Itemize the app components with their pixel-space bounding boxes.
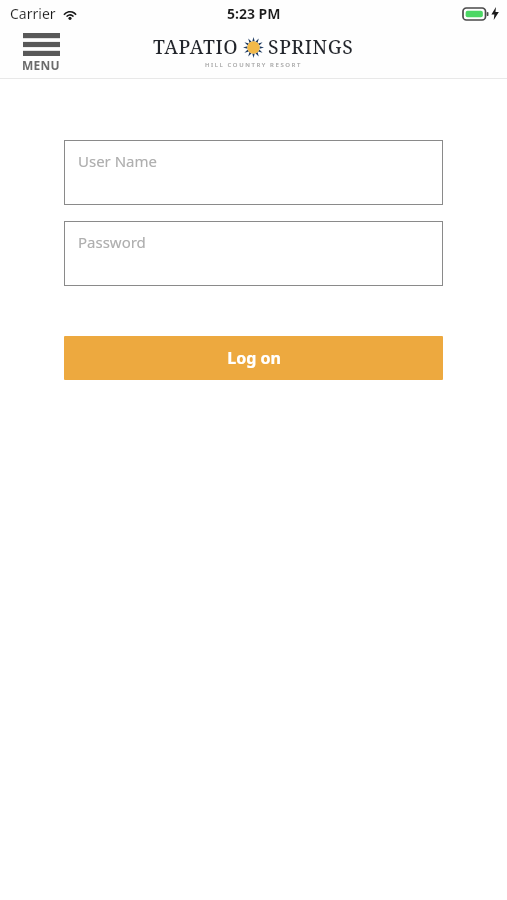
staticText: HILL COUNTRY RESORT (205, 61, 302, 69)
staticText: TAPATIO (153, 34, 239, 60)
button[interactable]: Log on (64, 336, 443, 380)
staticText: MENU (22, 57, 60, 73)
button[interactable]: Tapatio Springs Hill Country Resort (153, 34, 354, 69)
staticText: Log on (227, 347, 281, 369)
staticText: User Name (78, 151, 158, 171)
staticText: Carrier (10, 4, 56, 23)
staticText: Password (78, 232, 146, 252)
button[interactable]: Password (64, 221, 443, 286)
button[interactable]: User Name (64, 140, 443, 205)
staticText: SPRINGS (268, 34, 354, 60)
button[interactable]: Menu (22, 33, 60, 73)
staticText: 5:23 PM (227, 4, 281, 23)
